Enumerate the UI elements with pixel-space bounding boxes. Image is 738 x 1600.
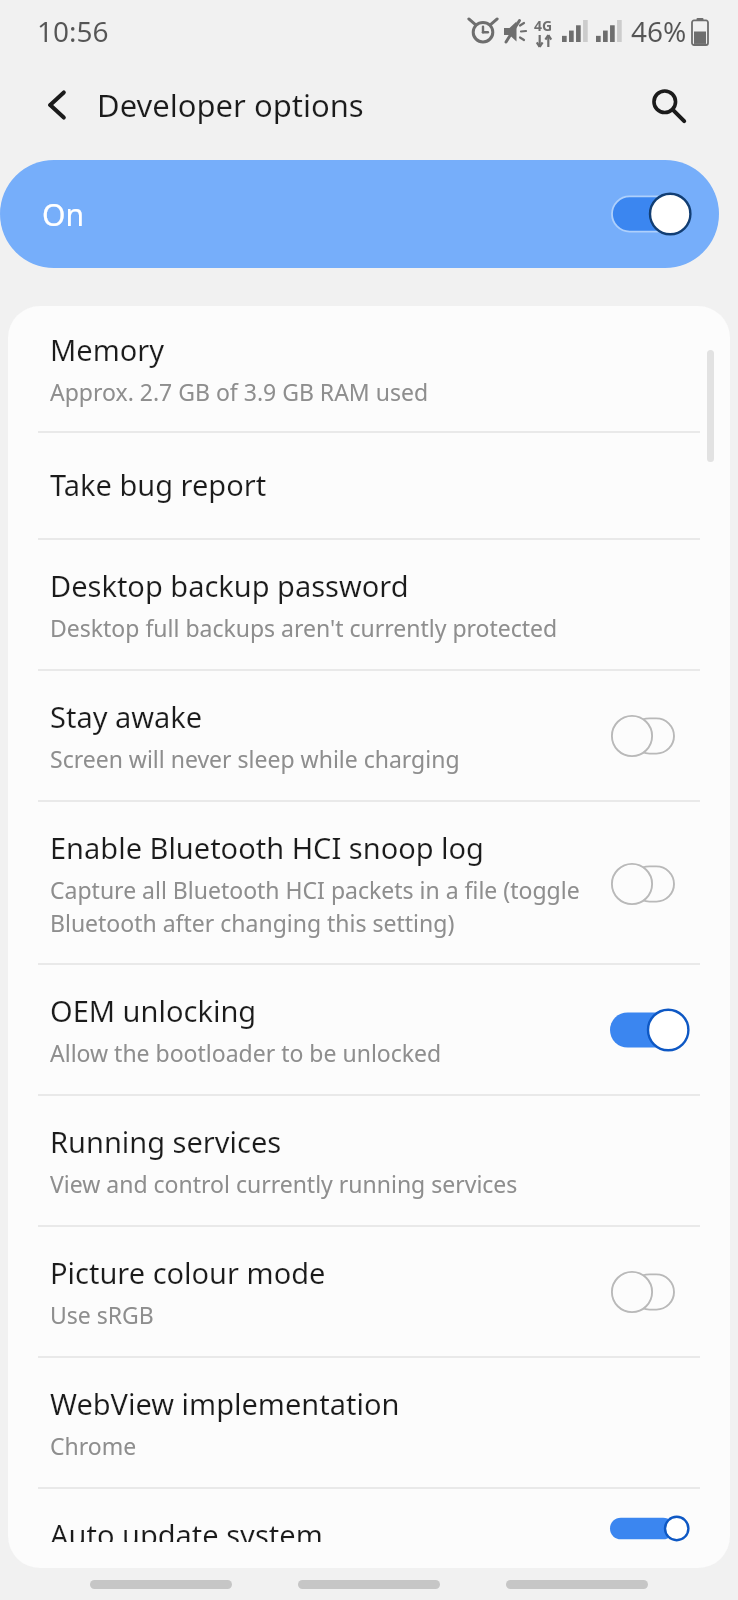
staticText: Capture all Bluetooth HCI packets in a f… bbox=[50, 874, 580, 939]
staticText: Chrome bbox=[50, 1430, 137, 1461]
button[interactable]: Memory bbox=[8, 306, 730, 433]
staticText: OEM unlocking bbox=[50, 991, 257, 1030]
button[interactable]: OEM unlocking bbox=[8, 965, 730, 1096]
button[interactable]: Stay awake bbox=[8, 671, 730, 802]
staticText: Auto update system bbox=[50, 1515, 323, 1542]
staticText: 4G bbox=[534, 16, 553, 35]
button[interactable]: Search bbox=[638, 75, 698, 135]
button[interactable]: Back bbox=[24, 72, 90, 138]
button[interactable]: Take bug report bbox=[8, 433, 730, 540]
staticText: Approx. 2.7 GB of 3.9 GB RAM used bbox=[50, 376, 429, 407]
staticText: Screen will never sleep while charging bbox=[50, 743, 460, 774]
staticText: WebView implementation bbox=[50, 1384, 400, 1423]
staticText: Picture colour mode bbox=[50, 1253, 326, 1292]
staticText: Running services bbox=[50, 1122, 282, 1161]
button[interactable]: Running services bbox=[8, 1096, 730, 1227]
staticText: Desktop backup password bbox=[50, 566, 409, 605]
button[interactable]: Navigation button bbox=[90, 1580, 232, 1589]
staticText: On bbox=[42, 194, 84, 235]
button[interactable]: On bbox=[0, 160, 719, 268]
button[interactable]: Navigation button bbox=[298, 1580, 440, 1589]
staticText: Allow the bootloader to be unlocked bbox=[50, 1037, 442, 1068]
staticText: 10:56 bbox=[37, 12, 109, 50]
staticText: Developer options bbox=[97, 84, 364, 126]
button[interactable]: Auto update system bbox=[8, 1489, 730, 1568]
staticText: Desktop full backups aren't currently pr… bbox=[50, 612, 558, 643]
button[interactable]: Enable Bluetooth HCI snoop log bbox=[8, 802, 730, 965]
button[interactable]: Picture colour mode bbox=[8, 1227, 730, 1358]
staticText: 46% bbox=[631, 12, 687, 50]
button[interactable]: Desktop backup password bbox=[8, 540, 730, 671]
staticText: View and control currently running servi… bbox=[50, 1168, 518, 1199]
button[interactable]: WebView implementation bbox=[8, 1358, 730, 1489]
staticText: Memory bbox=[50, 330, 165, 369]
staticText: Use sRGB bbox=[50, 1299, 154, 1330]
staticText: Enable Bluetooth HCI snoop log bbox=[50, 828, 484, 867]
staticText: Take bug report bbox=[50, 465, 267, 504]
button[interactable]: Navigation button bbox=[506, 1580, 648, 1589]
staticText: Stay awake bbox=[50, 697, 203, 736]
